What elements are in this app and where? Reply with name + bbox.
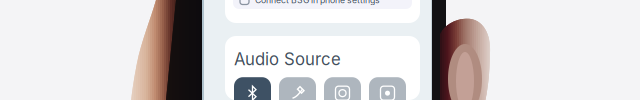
button[interactable]: Audio source xyxy=(369,77,406,100)
staticText: Audio Source xyxy=(234,49,341,69)
button[interactable]: Connect BSG in phone settings xyxy=(233,0,412,9)
button[interactable]: Audio source xyxy=(279,77,316,100)
button[interactable]: Audio source xyxy=(324,77,361,100)
button[interactable]: Audio source xyxy=(234,77,271,100)
staticText: Connect BSG in phone settings xyxy=(255,0,380,5)
